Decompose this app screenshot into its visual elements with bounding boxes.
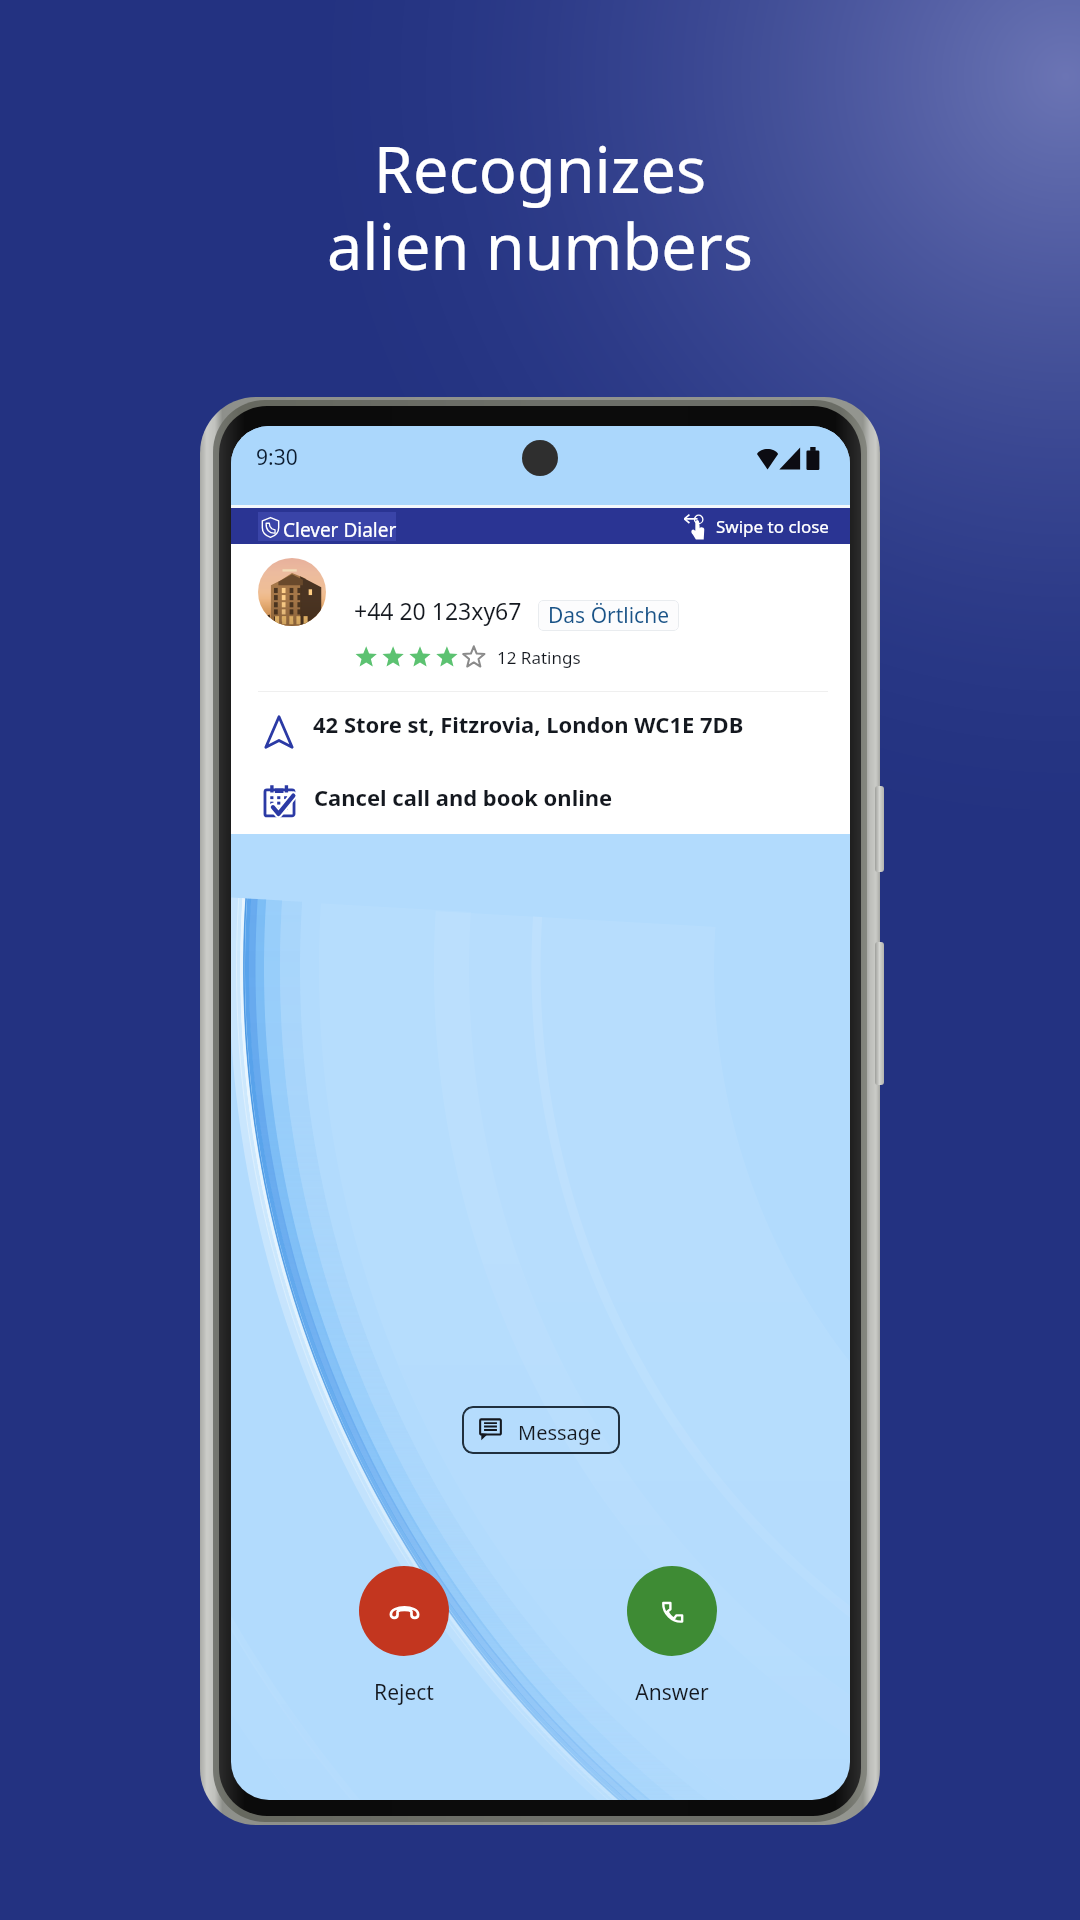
staticText: Swipe to close	[716, 515, 829, 538]
button[interactable]: Volume	[875, 786, 884, 872]
button[interactable]: Answer call	[627, 1566, 717, 1656]
staticText: Answer	[627, 1678, 717, 1707]
staticText: Recognizes alien numbers	[0, 126, 1080, 288]
button[interactable]: Swipe to close	[683, 510, 829, 542]
staticText: +44 20 123xy67	[354, 595, 522, 626]
staticText: 12 Ratings	[497, 646, 581, 669]
staticText: Das Örtliche	[548, 601, 670, 630]
staticText: Clever Dialer	[283, 517, 397, 543]
button[interactable]: Clever Dialer	[258, 512, 396, 541]
button[interactable]: Cancel call and book online	[231, 768, 850, 834]
button[interactable]: Message	[462, 1406, 620, 1454]
staticText: 42 Store st, Fitzrovia, London WC1E 7DB	[313, 709, 744, 739]
button[interactable]: Power	[875, 942, 884, 1085]
button[interactable]: Das Örtliche	[538, 600, 679, 631]
staticText: Message	[518, 1419, 602, 1446]
button[interactable]: 42 Store st, Fitzrovia, London WC1E 7DB	[231, 699, 850, 767]
staticText: Cancel call and book online	[314, 782, 613, 812]
staticText: 9:30	[256, 443, 298, 472]
button[interactable]: Reject call	[359, 1566, 449, 1656]
staticText: Reject	[359, 1678, 449, 1707]
